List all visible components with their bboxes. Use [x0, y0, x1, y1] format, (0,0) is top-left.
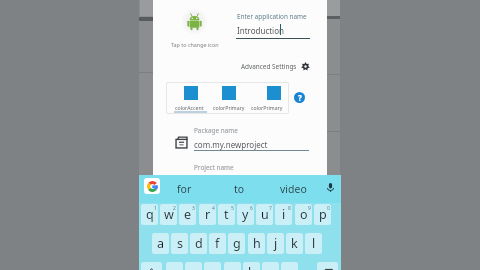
button[interactable]: n	[262, 262, 279, 270]
button[interactable]: v	[224, 262, 241, 270]
button[interactable]: d	[190, 233, 207, 254]
staticText: f	[215, 235, 220, 252]
staticText: p	[319, 206, 327, 223]
button[interactable]: r	[199, 204, 216, 225]
staticText: Advanced Settings	[241, 62, 297, 71]
button[interactable]: q	[141, 204, 158, 225]
staticText: com.my.newproject	[194, 139, 268, 150]
button[interactable]: s	[171, 233, 188, 254]
staticText: Enter application name	[237, 12, 307, 21]
button[interactable]: for	[162, 175, 206, 203]
staticText: 8	[288, 205, 291, 212]
button[interactable]: Tap to change icon	[181, 8, 208, 35]
button[interactable]: t	[218, 204, 235, 225]
button[interactable]: to	[217, 175, 261, 203]
button[interactable]: c	[204, 262, 221, 270]
button[interactable]: x	[185, 262, 202, 270]
button[interactable]: video	[271, 175, 315, 203]
button[interactable]: Shift	[141, 262, 162, 270]
staticText: w	[164, 206, 174, 223]
staticText: Tap to change icon	[171, 41, 219, 48]
staticText: t	[224, 206, 229, 223]
staticText: for	[177, 182, 192, 196]
staticText: r	[205, 206, 211, 223]
staticText: 3	[192, 205, 195, 212]
staticText: d	[195, 235, 203, 252]
button[interactable]: Help	[294, 92, 305, 103]
button[interactable]: a	[152, 233, 169, 254]
button[interactable]: o	[295, 204, 312, 225]
staticText: j	[274, 235, 278, 252]
staticText: 5	[231, 205, 234, 212]
button[interactable]: i	[275, 204, 292, 225]
staticText: 6	[250, 205, 253, 212]
staticText: y	[242, 206, 249, 223]
staticText: k	[291, 235, 298, 252]
staticText: 7	[269, 205, 272, 212]
button[interactable]: g	[228, 233, 245, 254]
button[interactable]: y	[237, 204, 254, 225]
staticText: q	[146, 206, 154, 223]
staticText: video	[280, 182, 307, 196]
button[interactable]: b	[243, 262, 260, 270]
staticText: Package name	[194, 126, 238, 135]
staticText: ?	[298, 92, 302, 103]
button[interactable]: Google search	[144, 178, 160, 194]
staticText: h	[253, 235, 261, 252]
button[interactable]: Advanced Settings	[241, 62, 310, 71]
staticText: o	[300, 206, 308, 223]
staticText: s	[177, 235, 183, 252]
button[interactable]: p	[314, 204, 331, 225]
staticText: i	[282, 206, 286, 223]
staticText: l	[312, 235, 316, 252]
button[interactable]: m	[281, 262, 298, 270]
button[interactable]: f	[209, 233, 226, 254]
staticText: Project name	[194, 163, 234, 172]
button[interactable]: k	[286, 233, 303, 254]
staticText: e	[184, 206, 192, 223]
button[interactable]: Backspace	[317, 262, 338, 270]
staticText: Introduction	[237, 25, 284, 36]
button[interactable]: Voice input	[324, 181, 336, 193]
button[interactable]: l	[305, 233, 322, 254]
button[interactable]: z	[166, 262, 183, 270]
staticText: a	[157, 235, 165, 252]
button[interactable]: u	[256, 204, 273, 225]
staticText: u	[261, 206, 269, 223]
staticText: colorPrimary	[251, 104, 283, 111]
staticText: to	[234, 182, 245, 196]
button[interactable]: j	[267, 233, 284, 254]
button[interactable]: w	[160, 204, 177, 225]
button[interactable]: h	[248, 233, 265, 254]
staticText: colorAccent	[175, 104, 204, 111]
staticText: b	[248, 264, 256, 270]
staticText: g	[233, 235, 241, 252]
staticText: 1	[154, 205, 157, 212]
staticText: 2	[173, 205, 176, 212]
staticText: 0	[327, 205, 330, 212]
staticText: 4	[212, 205, 215, 212]
button[interactable]: e	[179, 204, 196, 225]
staticText: 9	[308, 205, 311, 212]
staticText: colorPrimary	[213, 104, 245, 111]
